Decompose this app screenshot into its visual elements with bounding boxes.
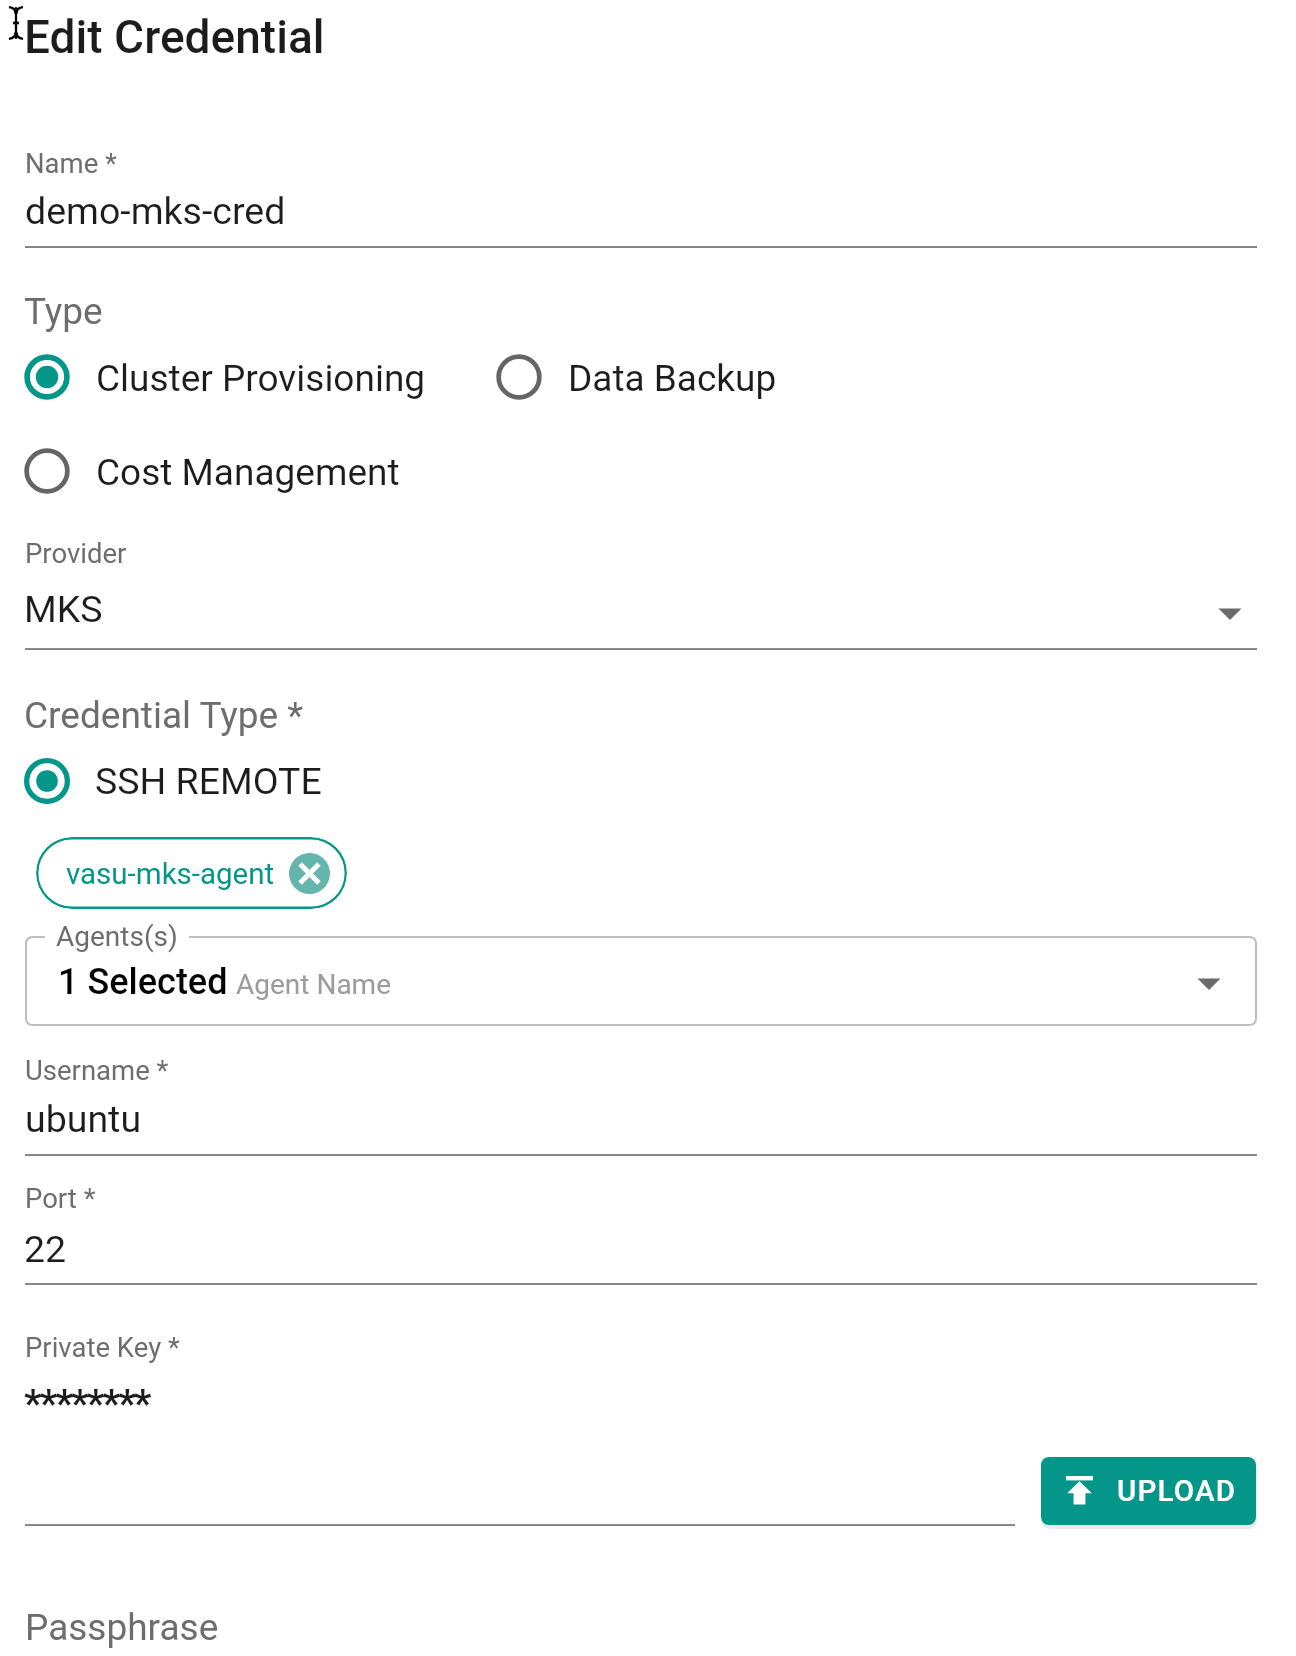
staticText: Edit Credential [24,10,325,64]
staticText: Name * [25,147,117,179]
button[interactable] [17,347,77,407]
staticText: ******** [24,1381,150,1427]
staticText: SSH REMOTE [95,759,322,803]
staticText: UPLOAD [1117,1474,1237,1509]
button[interactable] [17,441,77,501]
staticText: Credential Type * [24,694,304,737]
button[interactable] [25,936,1257,1026]
staticText: vasu-mks-agent [66,857,275,892]
staticText: Provider [25,537,127,569]
staticText: 22 [24,1227,67,1271]
staticText: Private Key * [25,1331,180,1363]
staticText: demo-mks-cred [25,189,286,233]
staticText: Passphrase [25,1606,219,1649]
staticText: ubuntu [25,1097,142,1141]
button[interactable] [17,751,77,811]
staticText: 1 Selected [58,961,228,1003]
staticText: Data Backup [568,357,777,400]
staticText: Type [24,290,103,333]
staticText: Cluster Provisioning [96,357,426,400]
staticText: Port * [25,1182,96,1214]
button[interactable]: Open agents dropdown [1185,966,1233,1002]
staticText: Agents(s) [56,920,178,953]
button[interactable]: vasu-mks-agent [36,837,347,909]
button[interactable]: Remove vasu-mks-agent [289,853,330,894]
staticText: Agent Name [236,968,392,1001]
staticText: MKS [24,587,103,631]
button[interactable]: Open provider dropdown [1206,596,1254,632]
button[interactable]: UPLOAD [1041,1457,1256,1525]
staticText: Cost Management [96,451,400,494]
button[interactable] [489,347,549,407]
staticText: Username * [25,1054,169,1086]
